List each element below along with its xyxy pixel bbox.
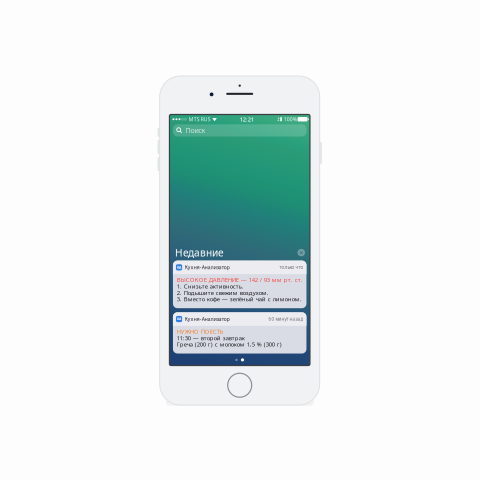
staticText: Кухня-Анализатор — [185, 316, 230, 322]
staticText: КА — [177, 265, 181, 270]
staticText: 100% — [284, 116, 297, 123]
staticText: КА — [177, 317, 181, 321]
staticText: MTS RUS — [189, 116, 211, 123]
staticText: 11:30 — второй завтрак — [177, 334, 245, 342]
staticText: Кухня-Анализатор — [185, 264, 230, 271]
staticText: ВЫСОКОЕ ДАВЛЕНИЕ — 142 / 93 мм рт. ст. — [177, 276, 303, 284]
staticText: 12:21 — [240, 115, 254, 123]
staticText: Поиск — [185, 126, 205, 135]
staticText: только что — [279, 264, 303, 270]
button[interactable]: Поиск — [173, 124, 306, 136]
staticText: НУЖНО ПОЕСТЬ — [177, 327, 224, 336]
button[interactable]: КА — [173, 261, 306, 308]
staticText: 1. Снизьте активность. — [177, 282, 244, 290]
button[interactable]: КА — [173, 312, 306, 353]
staticText: 2. Подышите свежим воздухом. — [177, 289, 269, 297]
staticText: 60 минут назад — [268, 316, 303, 322]
staticText: Недавние — [175, 246, 224, 259]
staticText: Греча (200 г) с молоком 1,5 % (300 г) — [177, 340, 282, 348]
button[interactable]: Close — [297, 249, 305, 256]
staticText: 3. Вместо кофе — зелёный чай с лимоном. — [177, 295, 302, 303]
